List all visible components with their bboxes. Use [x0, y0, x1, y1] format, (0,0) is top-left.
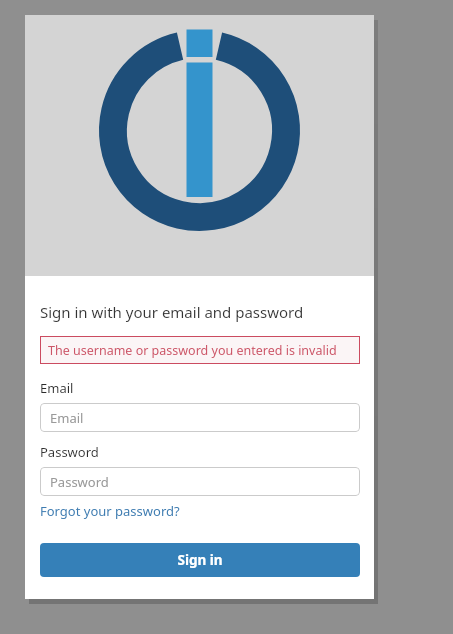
staticText: Password [40, 443, 99, 461]
staticText: Email [40, 379, 74, 397]
staticText: Sign in [177, 551, 223, 569]
staticText: The username or password you entered is … [48, 342, 337, 359]
button[interactable]: Forgot your password? [40, 501, 180, 521]
staticText: Sign in with your email and password [40, 302, 304, 322]
button[interactable]: Email [40, 403, 360, 432]
button[interactable]: Password [40, 467, 360, 496]
staticText: Password [50, 473, 109, 491]
staticText: Forgot your password? [40, 502, 180, 520]
staticText: Email [50, 409, 84, 427]
button[interactable]: Sign in [40, 543, 360, 577]
